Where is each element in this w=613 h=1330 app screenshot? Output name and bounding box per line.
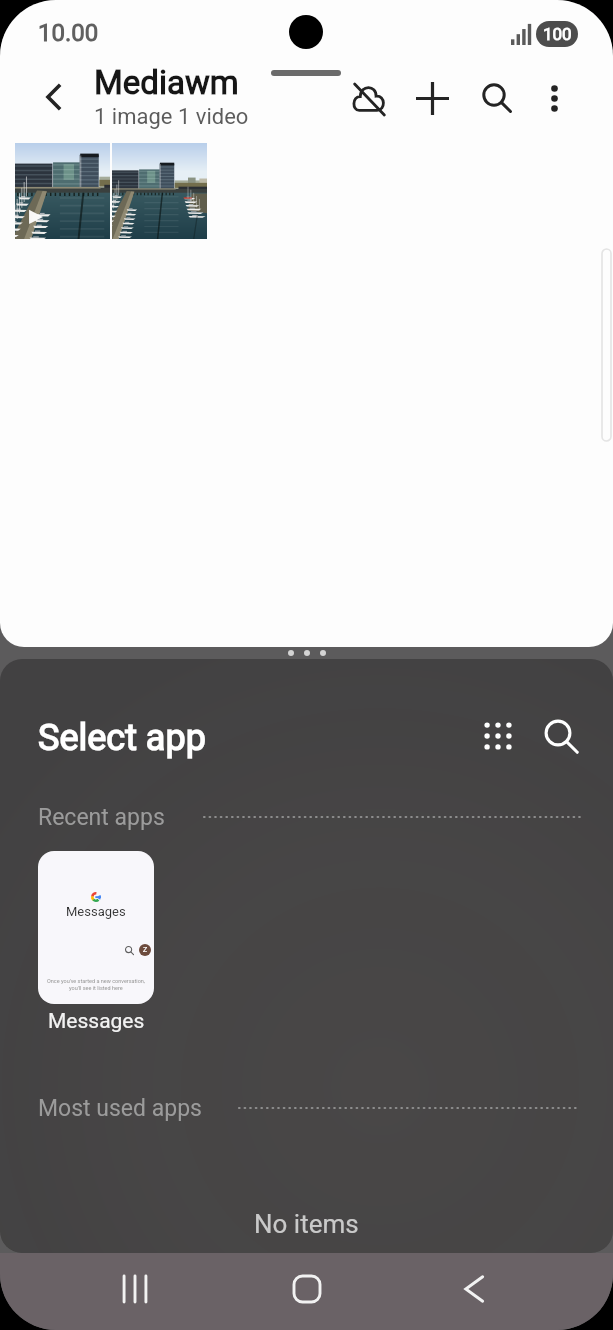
- button[interactable]: Search: [472, 73, 522, 123]
- button[interactable]: Cloud off: [343, 73, 393, 123]
- staticText: 1 image 1 video: [94, 104, 249, 130]
- staticText: Most used apps: [38, 1095, 202, 1122]
- button[interactable]: Recent apps: [99, 1253, 171, 1325]
- staticText: Select app: [38, 717, 206, 759]
- staticText: Recent apps: [38, 804, 165, 831]
- button[interactable]: Add: [407, 73, 457, 123]
- staticText: Mediawm: [94, 63, 239, 102]
- button[interactable]: All apps: [473, 711, 523, 761]
- button[interactable]: More options: [529, 73, 579, 123]
- staticText: 10.00: [38, 19, 99, 47]
- button[interactable]: Messages: [38, 851, 154, 1004]
- button[interactable]: Home: [271, 1253, 343, 1325]
- staticText: you'll see it listed here: [69, 985, 123, 991]
- button[interactable]: Back: [30, 72, 80, 122]
- staticText: No items: [254, 1209, 359, 1239]
- staticText: Z: [143, 946, 148, 954]
- staticText: 100: [543, 24, 572, 44]
- staticText: Messages: [48, 1009, 145, 1034]
- staticText: Messages: [66, 904, 126, 919]
- staticText: Once you've started a new conversation,: [47, 978, 145, 984]
- button[interactable]: Back: [442, 1253, 514, 1325]
- button[interactable]: Search apps: [536, 711, 586, 761]
